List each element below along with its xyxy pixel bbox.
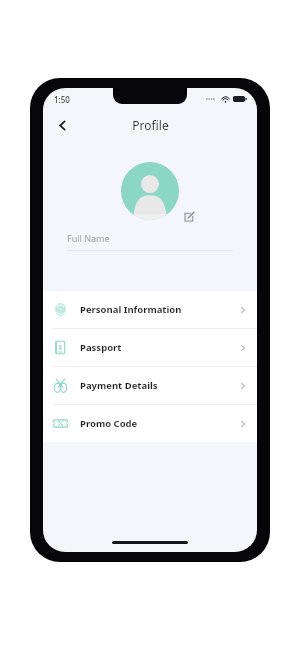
staticText: 1:50 — [54, 94, 70, 105]
button[interactable]: Back — [51, 114, 73, 136]
button[interactable]: Promo Code — [43, 405, 257, 442]
staticText: Full Name — [67, 232, 110, 244]
button[interactable]: Profile photo — [121, 162, 179, 220]
staticText: Profile — [132, 117, 169, 133]
staticText: Passport — [80, 341, 239, 354]
button[interactable]: Edit photo — [182, 210, 196, 224]
button[interactable]: Personal Information — [43, 291, 257, 328]
staticText: Promo Code — [80, 417, 239, 430]
staticText: Personal Information — [80, 303, 239, 316]
staticText: Payment Details — [80, 379, 239, 392]
button[interactable]: Payment Details — [43, 367, 257, 404]
button[interactable]: Full Name — [67, 232, 233, 251]
button[interactable]: Passport — [43, 329, 257, 366]
